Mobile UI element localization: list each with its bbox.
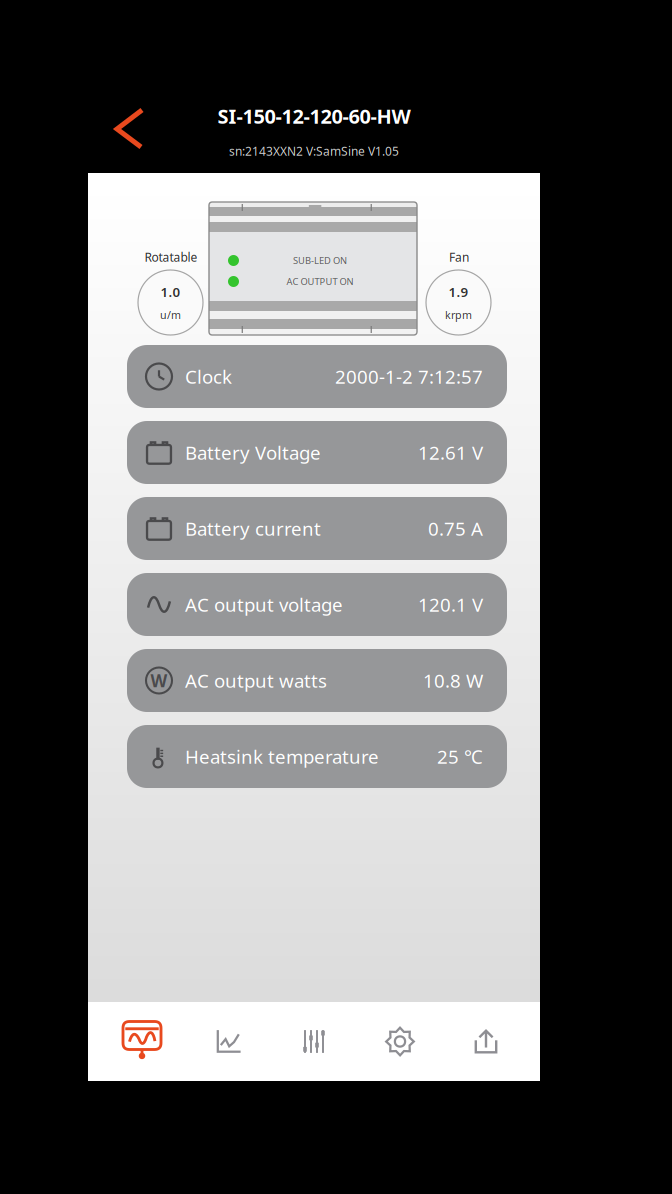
staticText: sn:2143XXN2 V:SamSine V1.05 [229, 143, 399, 159]
staticText: 12.61 V [418, 440, 483, 465]
button[interactable]: AC output voltage [127, 573, 507, 636]
staticText: Battery current [185, 516, 321, 541]
staticText: AC output watts [185, 668, 327, 693]
button[interactable]: Settings [370, 1008, 430, 1074]
button[interactable]: Sliders [284, 1008, 344, 1074]
button[interactable]: Monitor [112, 1008, 172, 1074]
button[interactable]: W [127, 649, 507, 712]
staticText: krpm [445, 308, 472, 322]
staticText: SI-150-12-120-60-HW [217, 103, 410, 129]
staticText: 1.9 [448, 283, 468, 301]
staticText: Heatsink temperature [185, 744, 379, 769]
staticText: AC OUTPUT ON [286, 275, 353, 288]
staticText: Rotatable [144, 249, 197, 265]
staticText: AC output voltage [185, 592, 343, 617]
button[interactable]: Share [456, 1008, 516, 1074]
staticText: Clock [185, 364, 232, 389]
button[interactable]: Heatsink temperature [127, 725, 507, 788]
staticText: 120.1 V [418, 592, 483, 617]
staticText: W [150, 669, 167, 692]
staticText: Fan [449, 249, 469, 265]
button[interactable]: Clock [127, 345, 507, 408]
staticText: SUB-LED ON [293, 254, 347, 267]
button[interactable]: Charts [198, 1008, 258, 1074]
staticText: 1.0 [160, 283, 180, 301]
staticText: 0.75 A [428, 516, 483, 541]
staticText: 2000-1-2 7:12:57 [335, 364, 483, 389]
staticText: u/m [160, 308, 181, 322]
button[interactable]: Battery Voltage [127, 421, 507, 484]
staticText: 25 ℃ [437, 744, 483, 769]
staticText: Battery Voltage [185, 440, 321, 465]
staticText: 10.8 W [423, 668, 483, 693]
button[interactable]: Back [103, 98, 156, 159]
button[interactable]: Battery current [127, 497, 507, 560]
